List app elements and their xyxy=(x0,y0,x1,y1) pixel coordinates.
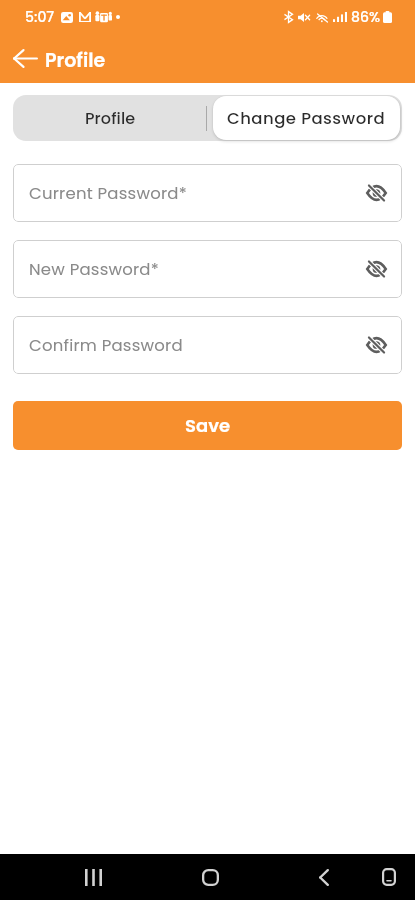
button[interactable]: New Password* xyxy=(13,240,402,298)
button[interactable]: Save xyxy=(13,401,402,450)
button[interactable]: Home xyxy=(190,857,230,897)
button[interactable]: Profile xyxy=(13,95,208,141)
button[interactable]: Toggle password visibility xyxy=(362,331,390,359)
button[interactable]: Recent apps xyxy=(73,857,113,897)
staticText: Change Password xyxy=(227,107,386,130)
staticText: Current Password* xyxy=(29,182,187,205)
staticText: Profile xyxy=(85,107,136,129)
button[interactable]: Confirm Password xyxy=(13,316,402,374)
button[interactable]: Toggle password visibility xyxy=(362,179,390,207)
staticText: Save xyxy=(185,413,231,438)
staticText: Confirm Password xyxy=(29,334,183,357)
button[interactable]: Back xyxy=(304,857,344,897)
button[interactable]: Back xyxy=(9,42,42,75)
staticText: Profile xyxy=(45,47,106,74)
staticText: New Password* xyxy=(29,258,159,281)
staticText: 86% xyxy=(351,7,381,27)
button[interactable]: Device xyxy=(369,857,409,897)
button[interactable]: Current Password* xyxy=(13,164,402,222)
staticText: 5:07 xyxy=(25,7,55,27)
button[interactable]: Change Password xyxy=(213,96,400,140)
button[interactable]: Toggle password visibility xyxy=(362,255,390,283)
